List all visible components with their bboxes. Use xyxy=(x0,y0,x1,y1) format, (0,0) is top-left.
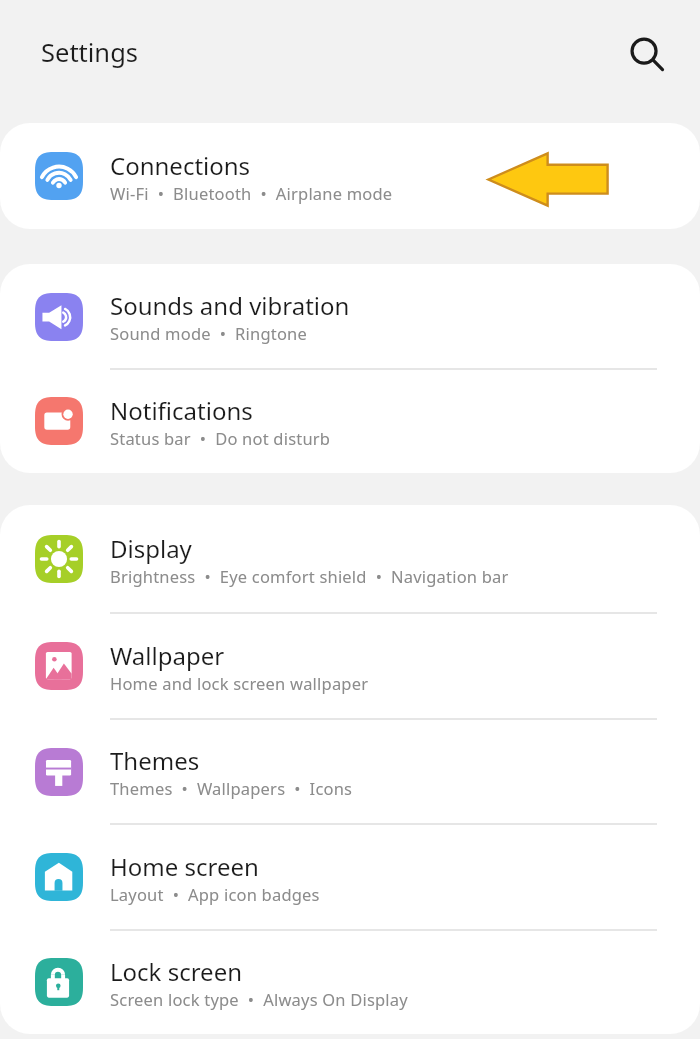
button[interactable]: Display xyxy=(0,505,700,613)
staticText: Connections xyxy=(110,149,251,182)
button[interactable]: Connections xyxy=(0,123,700,229)
staticText: Brightness • Eye comfort shield • Naviga… xyxy=(110,565,509,587)
staticText: Status bar • Do not disturb xyxy=(110,427,331,449)
staticText: Wi-Fi • Bluetooth • Airplane mode xyxy=(110,182,393,204)
staticText: Screen lock type • Always On Display xyxy=(110,988,408,1010)
button[interactable]: Home screen xyxy=(0,824,700,930)
staticText: Themes xyxy=(110,744,200,777)
button[interactable]: Sounds and vibration xyxy=(0,264,700,369)
button[interactable]: Lock screen xyxy=(0,930,700,1034)
button[interactable]: Themes xyxy=(0,719,700,824)
staticText: Sound mode • Ringtone xyxy=(110,322,308,344)
button[interactable]: Search xyxy=(621,28,675,82)
staticText: Layout • App icon badges xyxy=(110,883,320,905)
staticText: Display xyxy=(110,532,192,565)
staticText: Wallpaper xyxy=(110,639,225,672)
staticText: Lock screen xyxy=(110,955,243,988)
button[interactable]: Wallpaper xyxy=(0,613,700,719)
staticText: Notifications xyxy=(110,394,253,427)
staticText: Home screen xyxy=(110,850,259,883)
button[interactable]: Notifications xyxy=(0,369,700,473)
staticText: Settings xyxy=(41,35,139,70)
staticText: Themes • Wallpapers • Icons xyxy=(110,777,353,799)
staticText: Home and lock screen wallpaper xyxy=(110,672,369,694)
staticText: Sounds and vibration xyxy=(110,289,350,322)
